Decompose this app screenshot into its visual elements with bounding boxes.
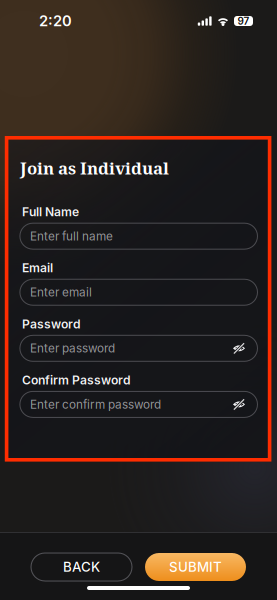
staticText: Enter confirm password xyxy=(30,397,161,411)
staticText: 2:20 xyxy=(39,12,72,30)
button[interactable]: Enter email xyxy=(20,279,257,305)
staticText: Confirm Password xyxy=(22,373,131,387)
staticText: Password xyxy=(22,317,81,331)
staticText: BACK xyxy=(63,559,100,575)
staticText: Join as Individual xyxy=(20,157,169,179)
staticText: Enter email xyxy=(30,285,92,299)
staticText: Full Name xyxy=(22,204,79,219)
staticText: Enter full name xyxy=(30,229,113,243)
button[interactable]: Enter password xyxy=(20,335,257,361)
staticText: 97 xyxy=(237,15,249,27)
staticText: Enter password xyxy=(30,341,115,355)
button[interactable]: BACK xyxy=(31,553,132,581)
button[interactable]: SUBMIT xyxy=(145,553,246,581)
button[interactable]: Enter confirm password xyxy=(20,391,257,417)
button[interactable]: Enter full name xyxy=(20,223,257,249)
staticText: Email xyxy=(22,261,53,275)
staticText: SUBMIT xyxy=(169,559,222,575)
